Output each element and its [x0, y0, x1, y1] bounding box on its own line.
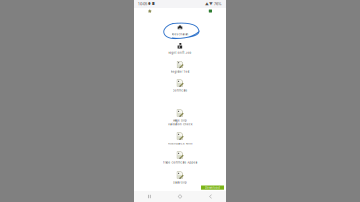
- staticText: Register Test: [170, 70, 189, 73]
- button[interactable]: Night Shift Job: [134, 43, 226, 55]
- button[interactable]: Home: [165, 191, 195, 202]
- staticText: Certificate: [172, 89, 187, 92]
- staticText: Validation Check: [168, 123, 192, 126]
- staticText: Wage Slip: [173, 119, 187, 122]
- staticText: ● ■: [147, 2, 155, 6]
- button[interactable]: Fees Challan: [134, 25, 226, 36]
- button[interactable]: Recent apps: [134, 191, 165, 202]
- button[interactable]: Trade Certificate Appeal: [134, 151, 226, 165]
- button[interactable]: Download: [201, 185, 224, 190]
- staticText: 10:05: [138, 2, 147, 6]
- staticText: ▲▼ 76%: [205, 2, 222, 6]
- staticText: Night Shift Job: [168, 51, 191, 54]
- button[interactable]: Salary Slip: [134, 171, 226, 185]
- button[interactable]: Certificate: [134, 79, 226, 93]
- button[interactable]: Wage Slip: [134, 109, 226, 126]
- staticText: Salary Slip: [173, 181, 187, 184]
- staticText: Attendance Form: [168, 142, 192, 145]
- button[interactable]: Attendance Form: [134, 132, 226, 146]
- button[interactable]: Back: [195, 191, 226, 202]
- button[interactable]: Register Test: [134, 61, 226, 74]
- staticText: Trade Certificate Appeal: [162, 161, 197, 164]
- staticText: Fees Challan: [171, 33, 188, 36]
- staticText: Download: [205, 186, 220, 189]
